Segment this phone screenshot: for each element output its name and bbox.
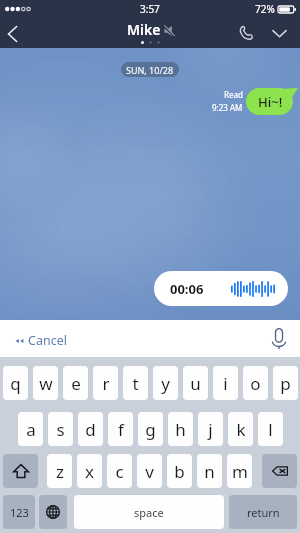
staticText: Read [224,89,243,100]
button[interactable]: Microphone [262,320,296,357]
button[interactable]: t [123,366,148,400]
staticText: j [208,418,213,441]
staticText: k [236,418,246,441]
staticText: l [268,418,273,441]
staticText: 3:57 [140,2,160,16]
staticText: x [85,460,94,483]
staticText: m [232,460,248,483]
staticText: r [102,372,110,395]
staticText: Mike [127,20,161,39]
button[interactable]: f [108,412,133,446]
button[interactable]: j [198,412,223,446]
button[interactable]: s [48,412,73,446]
staticText: n [204,460,215,483]
staticText: space [134,505,164,520]
staticText: h [175,418,186,441]
button[interactable]: m [227,454,252,488]
button[interactable]: z [47,454,72,488]
staticText: f [118,418,124,441]
staticText: g [145,418,156,441]
button[interactable]: q [3,366,28,400]
button[interactable]: g [138,412,163,446]
button[interactable]: p [273,366,298,400]
button[interactable]: c [107,454,132,488]
button[interactable]: b [167,454,192,488]
staticText: w [39,372,53,395]
button[interactable]: x [77,454,102,488]
button[interactable]: w [33,366,58,400]
staticText: o [250,372,261,395]
button[interactable]: Back [0,17,28,48]
button[interactable]: k [228,412,253,446]
button[interactable]: d [78,412,103,446]
button[interactable]: Shift [3,454,38,488]
button[interactable]: Backspace [262,454,297,488]
staticText: z [56,460,64,483]
staticText: i [223,372,228,395]
button[interactable]: h [168,412,193,446]
button[interactable]: u [183,366,208,400]
button[interactable]: a [18,412,43,446]
staticText: q [10,372,21,395]
staticText: b [174,460,185,483]
staticText: t [132,372,139,395]
staticText: 00:06 [170,280,204,298]
button[interactable]: 00:06 [154,271,288,306]
staticText: u [190,372,201,395]
button[interactable]: o [243,366,268,400]
staticText: e [71,372,81,395]
staticText: 72% [255,2,275,16]
staticText: Cancel [28,332,67,349]
button[interactable]: r [93,366,118,400]
staticText: p [280,372,291,395]
button[interactable]: y [153,366,178,400]
button[interactable]: v [137,454,162,488]
button[interactable]: space [74,495,224,529]
staticText: d [85,418,96,441]
staticText: y [161,372,170,395]
staticText: c [115,460,124,483]
staticText: 9:23 AM [212,102,243,113]
button[interactable]: 123 [3,495,35,529]
button[interactable]: Switch keyboard [39,495,67,529]
staticText: a [26,418,36,441]
button[interactable]: l [258,412,283,446]
staticText: Hi~! [258,93,283,111]
staticText: 123 [10,505,29,520]
button[interactable]: Call [229,17,261,48]
button[interactable]: i [213,366,238,400]
staticText: SUN, 10/28 [126,64,174,76]
button[interactable]: Cancel [0,323,77,354]
button[interactable]: return [229,495,297,529]
button[interactable]: n [197,454,222,488]
staticText: s [56,418,65,441]
button[interactable]: Show more [263,17,295,48]
staticText: v [145,460,154,483]
staticText: return [247,505,280,520]
button[interactable]: e [63,366,88,400]
